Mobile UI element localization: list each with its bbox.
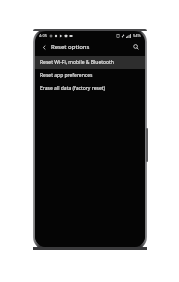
other: Power button [146, 128, 148, 162]
button[interactable]: Erase all data (factory reset) [35, 82, 145, 95]
staticText: Reset Wi-Fi, mobile & Bluetooth [40, 59, 114, 66]
button[interactable]: Back [39, 42, 49, 52]
staticText: 54% [133, 33, 141, 38]
staticText: Reset options [51, 43, 90, 51]
staticText: 4:05 [39, 33, 47, 38]
button[interactable]: Reset Wi-Fi, mobile & Bluetooth [35, 56, 145, 69]
button[interactable]: Search [131, 42, 141, 52]
staticText: Reset app preferences [40, 72, 93, 79]
button[interactable]: Reset app preferences [35, 69, 145, 82]
staticText: Erase all data (factory reset) [40, 85, 106, 92]
